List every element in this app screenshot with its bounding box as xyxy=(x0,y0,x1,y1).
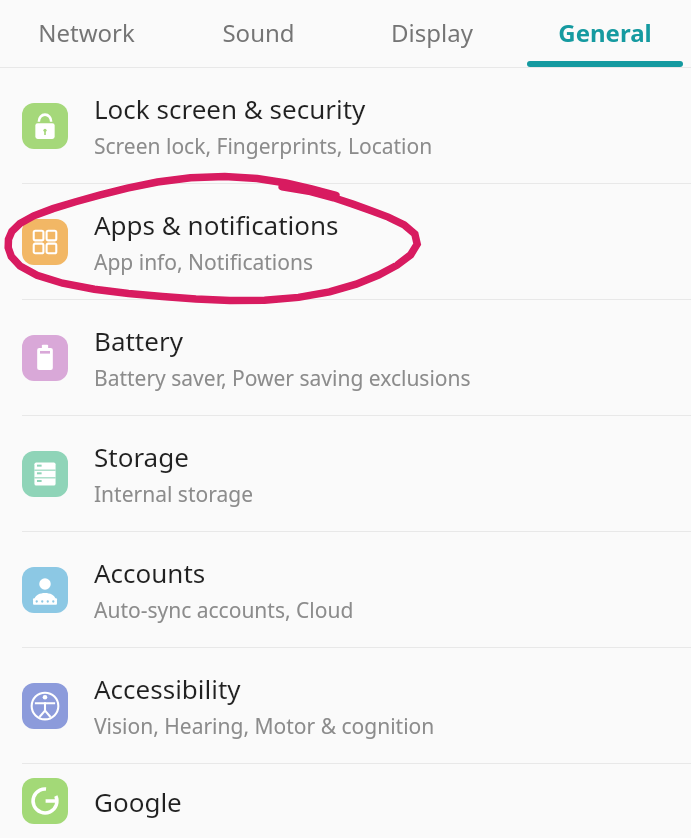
staticText: Google xyxy=(94,784,182,819)
staticText: Display xyxy=(391,16,473,49)
other: Storage xyxy=(22,451,68,497)
staticText: Battery xyxy=(94,323,183,358)
button[interactable]: Battery xyxy=(0,300,691,415)
staticText: Network xyxy=(38,16,135,49)
staticText: Accessibility xyxy=(94,671,241,706)
button[interactable]: Storage xyxy=(0,416,691,531)
button[interactable]: General xyxy=(518,0,691,68)
staticText: Auto-sync accounts, Cloud xyxy=(94,596,354,625)
other: Battery xyxy=(22,335,68,381)
staticText: Screen lock, Fingerprints, Location xyxy=(94,132,433,161)
button[interactable]: Lock screen and security xyxy=(0,68,691,183)
button[interactable]: Sound xyxy=(172,0,345,68)
other: Lock screen and security xyxy=(22,103,68,149)
other: Apps and notifications xyxy=(22,219,68,265)
staticText: Sound xyxy=(222,16,295,49)
button[interactable]: Network xyxy=(0,0,172,68)
staticText: Apps & notifications xyxy=(94,207,339,242)
other: Accounts xyxy=(22,567,68,613)
staticText: General xyxy=(558,16,652,49)
staticText: App info, Notifications xyxy=(94,248,314,277)
button[interactable]: Google xyxy=(0,764,691,838)
other: Google xyxy=(22,778,68,824)
staticText: Storage xyxy=(94,439,189,474)
button[interactable]: Apps and notifications xyxy=(0,184,691,299)
other: Accessibility xyxy=(22,683,68,729)
staticText: Battery saver, Power saving exclusions xyxy=(94,364,471,393)
staticText: Accounts xyxy=(94,555,206,590)
button[interactable]: Display xyxy=(345,0,518,68)
staticText: Lock screen & security xyxy=(94,91,366,126)
button[interactable]: Accessibility xyxy=(0,648,691,763)
button[interactable]: Accounts xyxy=(0,532,691,647)
staticText: Vision, Hearing, Motor & cognition xyxy=(94,712,435,741)
staticText: Internal storage xyxy=(94,480,253,509)
